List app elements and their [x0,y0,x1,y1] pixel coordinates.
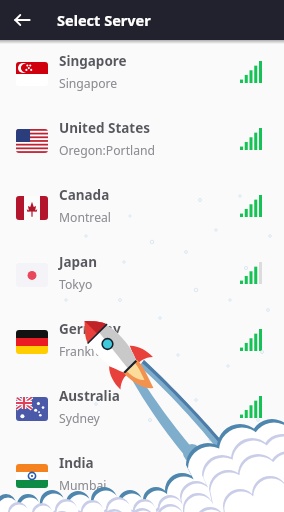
staticText: Oregon:Portland [59,142,156,159]
staticText: Singapore [59,52,127,70]
staticText: United States [59,119,151,137]
staticText: Germany [59,320,121,338]
button[interactable]: Japan [0,241,284,308]
staticText: Australia [59,387,120,405]
button[interactable]: Australia [0,375,284,442]
staticText: Sydney [59,410,100,427]
button[interactable]: India [0,442,284,509]
button[interactable]: Back [3,1,41,39]
staticText: Tokyo [59,276,93,293]
staticText: Japan [59,253,97,271]
button[interactable]: Singapore [0,40,284,107]
button[interactable]: Canada [0,174,284,241]
staticText: Mumbai [59,477,107,494]
button[interactable]: United States [0,107,284,174]
button[interactable]: Germany [0,308,284,375]
staticText: Singapore [59,75,118,92]
staticText: India [59,454,94,472]
staticText: Select Server [57,10,151,30]
staticText: Frankfurt [59,343,113,360]
staticText: Canada [59,186,110,204]
staticText: Montreal [59,209,112,226]
